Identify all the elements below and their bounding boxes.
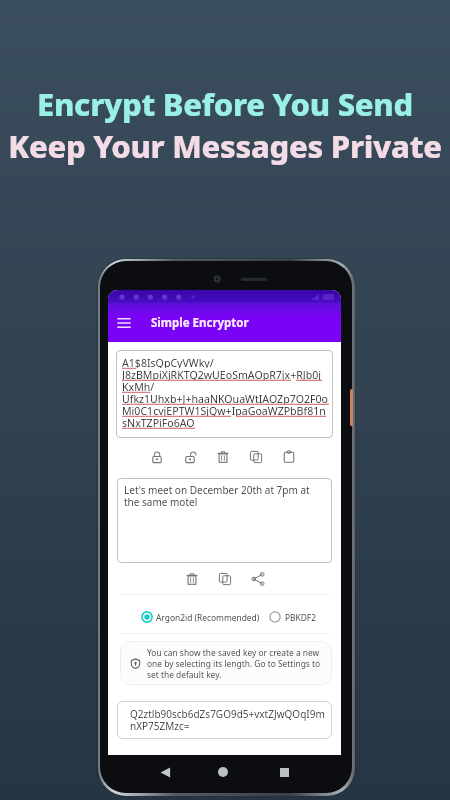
staticText: Let's meet on December 20th at 7pm at th… [124, 483, 327, 509]
staticText: Argon2id (Recommended) [156, 612, 260, 623]
button[interactable]: Clear [175, 568, 208, 590]
staticText: A1$8IsQpCyVWky/ [122, 356, 214, 368]
staticText: PBKDF2 [285, 612, 317, 623]
staticText: Simple Encryptor [151, 315, 249, 331]
button[interactable]: Clear [206, 446, 239, 468]
staticText: sNxTZPiFo6AO [122, 416, 195, 428]
button[interactable]: Argon2id (Recommended) [141, 611, 260, 623]
staticText: Q2ztlb90scb6dZs7GO9d5+vxtZJwQOqI9mnXP75Z… [130, 707, 326, 733]
staticText: Ufkz1Uhxb+J+haaNKOuaWtIAOZp7O2F0o [122, 392, 329, 404]
button[interactable]: Share [241, 568, 274, 590]
other: Open navigation menu [114, 313, 134, 333]
staticText: You can show the saved key or create a n… [147, 647, 332, 680]
staticText: Keep Your Messages Private [8, 125, 442, 167]
button[interactable]: You can show the saved key or create a n… [120, 641, 332, 685]
staticText: J8zBMpiXjRKTQ2wUEoSmAOpR7jx+RJb0j [122, 368, 322, 380]
button[interactable]: Recents [272, 760, 296, 784]
button[interactable]: Let's meet on December 20th at 7pm at th… [117, 478, 332, 563]
button[interactable]: Encrypt [140, 446, 173, 468]
button[interactable]: A1$8IsQpCyVWky/ [116, 350, 333, 438]
button[interactable]: Decrypt [173, 446, 206, 468]
button[interactable]: Back [153, 760, 177, 784]
staticText: KxMh/ [122, 380, 155, 392]
button[interactable]: Copy [208, 568, 241, 590]
button[interactable]: Q2ztlb90scb6dZs7GO9d5+vxtZJwQOqI9mnXP75Z… [117, 701, 332, 739]
staticText: Encrypt Before You Send [37, 83, 413, 125]
staticText: Mi0C1cvjEPTW1SjQw+IpaGoaWZPbBf81n [122, 404, 326, 416]
button[interactable]: Home [211, 760, 235, 784]
button[interactable]: PBKDF2 [269, 611, 317, 623]
button[interactable]: Open navigation menu [108, 303, 341, 342]
button[interactable]: Copy [239, 446, 272, 468]
button[interactable]: Paste [272, 446, 305, 468]
